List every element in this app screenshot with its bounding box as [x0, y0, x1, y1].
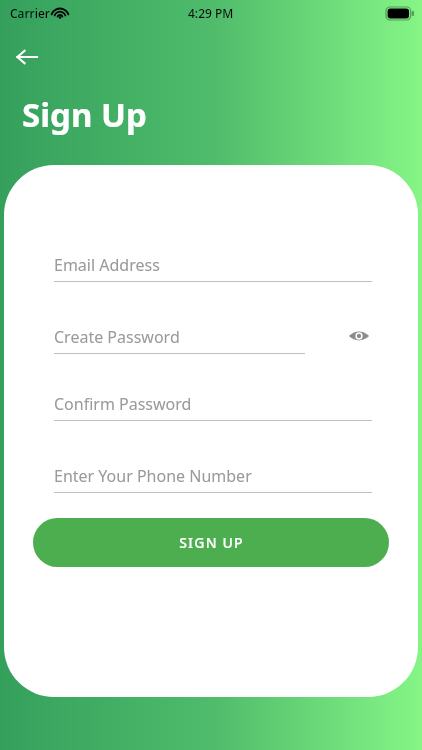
staticText: Enter Your Phone Number	[54, 465, 252, 487]
button[interactable]: Show password	[346, 323, 372, 349]
staticText: Create Password	[54, 326, 180, 348]
button[interactable]: Confirm Password	[54, 385, 372, 457]
button[interactable]: Email Address	[54, 246, 372, 318]
staticText: SIGN UP	[179, 533, 244, 552]
button[interactable]: Create Password	[54, 318, 372, 390]
button[interactable]: SIGN UP	[33, 518, 389, 567]
button[interactable]: Back	[8, 38, 46, 76]
staticText: Confirm Password	[54, 393, 192, 415]
staticText: Carrier	[10, 5, 50, 21]
staticText: 4:29 PM	[188, 5, 234, 21]
staticText: Sign Up	[22, 92, 147, 137]
button[interactable]: Enter Your Phone Number	[54, 457, 372, 529]
staticText: Email Address	[54, 254, 160, 276]
